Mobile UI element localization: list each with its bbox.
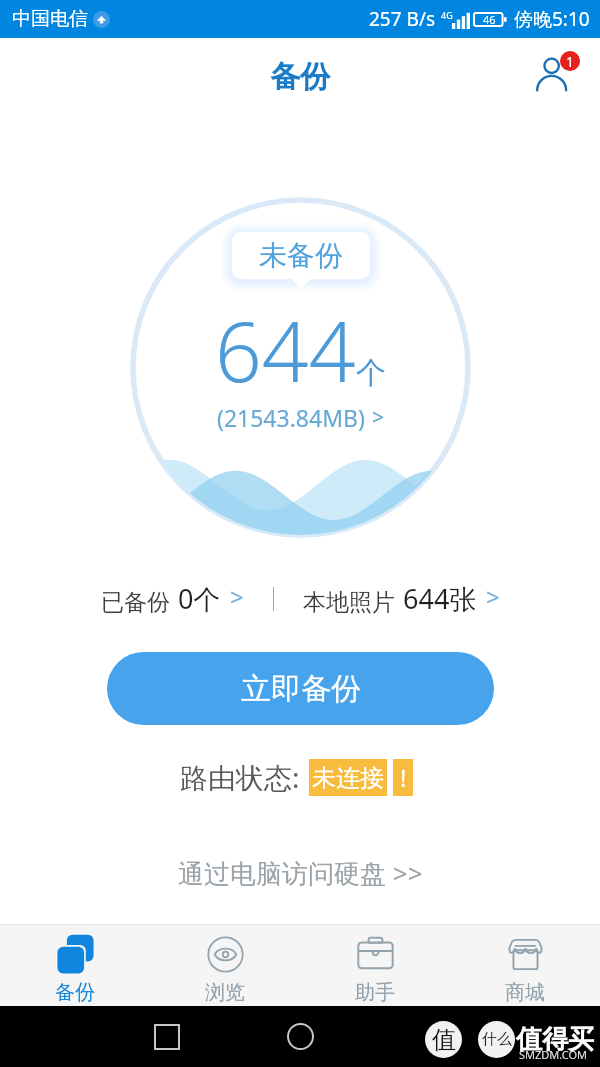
staticText: 备份 bbox=[270, 58, 330, 96]
staticText: > bbox=[486, 580, 500, 613]
button[interactable]: 未连接 bbox=[309, 759, 387, 796]
staticText: > bbox=[230, 580, 244, 613]
staticText: 什么 bbox=[482, 1030, 512, 1049]
staticText: 助手 bbox=[355, 980, 395, 1005]
staticText: 立即备份 bbox=[241, 670, 361, 708]
staticText: 傍晚5:10 bbox=[514, 6, 590, 32]
button[interactable]: 立即备份 bbox=[107, 652, 494, 725]
button[interactable]: Account bbox=[527, 44, 583, 100]
staticText: 257 B/s bbox=[369, 6, 436, 32]
staticText: 备份 bbox=[55, 980, 95, 1005]
button[interactable]: Home bbox=[287, 1023, 314, 1050]
staticText: 中国电信 bbox=[12, 7, 88, 31]
staticText: 已备份 bbox=[101, 588, 170, 617]
staticText: 未备份 bbox=[259, 238, 343, 273]
staticText: 1 bbox=[566, 52, 575, 71]
staticText: > bbox=[372, 403, 385, 432]
staticText: ! bbox=[400, 761, 407, 794]
staticText: 未连接 bbox=[312, 763, 384, 793]
button[interactable]: 通过电脑访问硬盘 >> bbox=[178, 855, 423, 891]
staticText: SMZDM.COM bbox=[519, 1047, 588, 1062]
staticText: 个 bbox=[356, 354, 386, 392]
staticText: 本地照片 bbox=[303, 588, 395, 617]
button[interactable]: 商城 bbox=[450, 925, 600, 1006]
staticText: 路由状态: bbox=[180, 758, 300, 796]
button[interactable]: 浏览 bbox=[150, 925, 300, 1006]
button[interactable]: ! bbox=[393, 759, 413, 796]
staticText: 644 bbox=[215, 294, 356, 406]
staticText: 46 bbox=[483, 12, 496, 27]
button[interactable]: Recents bbox=[155, 1025, 179, 1049]
staticText: 值得买 bbox=[516, 1023, 594, 1056]
button[interactable]: 备份 bbox=[0, 925, 150, 1006]
button[interactable]: 本地照片 bbox=[303, 580, 500, 617]
staticText: 4G bbox=[441, 9, 453, 21]
staticText: 商城 bbox=[505, 980, 545, 1005]
staticText: 值 bbox=[432, 1025, 456, 1055]
button[interactable]: 助手 bbox=[300, 925, 450, 1006]
staticText: 0个 bbox=[178, 580, 221, 617]
button[interactable]: 已备份 bbox=[101, 580, 244, 617]
staticText: 浏览 bbox=[205, 980, 245, 1005]
staticText: 644张 bbox=[403, 580, 477, 617]
button[interactable]: (21543.84MB) bbox=[217, 402, 385, 433]
staticText: (21543.84MB) bbox=[217, 402, 365, 433]
